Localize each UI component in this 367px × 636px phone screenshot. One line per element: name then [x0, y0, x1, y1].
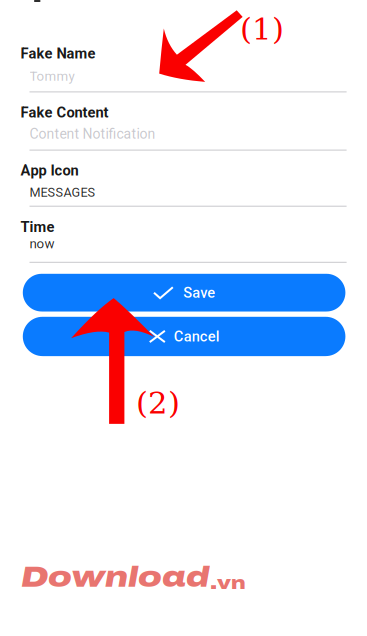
staticText: (2)	[136, 385, 180, 421]
staticText: (1)	[240, 11, 284, 47]
staticText: Tommy	[29, 68, 74, 84]
staticText: now	[29, 236, 54, 251]
staticText: App Icon	[20, 162, 78, 179]
button[interactable]: Save	[23, 274, 345, 311]
button[interactable]: Cancel	[23, 317, 345, 356]
staticText: Fake Content	[20, 104, 108, 121]
button[interactable]: now	[29, 234, 347, 254]
button[interactable]: Content Notification	[29, 124, 347, 144]
staticText: Fake Name	[20, 45, 95, 62]
staticText: Content Notification	[29, 126, 155, 142]
staticText: Time	[20, 218, 54, 236]
staticText: Save	[183, 284, 215, 301]
button[interactable]: MESSAGES	[29, 182, 347, 202]
staticText: MESSAGES	[29, 185, 95, 200]
staticText: .vn	[210, 573, 246, 593]
staticText: Download	[21, 561, 209, 593]
staticText: Cancel	[174, 328, 220, 345]
button[interactable]: Tommy	[29, 66, 347, 86]
